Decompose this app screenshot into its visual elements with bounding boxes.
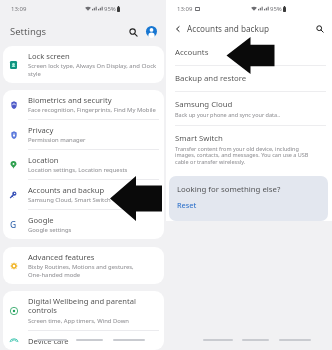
staticText: Backup and restore bbox=[175, 73, 247, 84]
staticText: Transfer content from your old device, i… bbox=[175, 145, 309, 166]
staticText: Privacy bbox=[28, 125, 54, 135]
staticText: Back up your phone and sync your data.. bbox=[175, 111, 281, 118]
button[interactable]: Digital Wellbeing and parental controls bbox=[3, 291, 164, 330]
staticText: Google bbox=[28, 215, 54, 225]
button[interactable]: Smart Switch bbox=[166, 126, 332, 173]
staticText: 13:09 bbox=[11, 5, 27, 13]
button[interactable]: Lock screen bbox=[3, 46, 164, 83]
button[interactable]: Backup and restore bbox=[166, 66, 332, 91]
button[interactable]: Advanced features bbox=[3, 247, 164, 284]
staticText: G bbox=[10, 219, 17, 231]
button[interactable]: Accounts bbox=[166, 40, 332, 65]
button[interactable]: Home bbox=[76, 339, 103, 341]
button[interactable]: Samsung Cloud bbox=[166, 92, 332, 125]
button[interactable]: Reset bbox=[177, 200, 197, 210]
staticText: Samsung Cloud, Smart Switch bbox=[28, 196, 111, 204]
staticText: Settings bbox=[10, 25, 47, 38]
button[interactable]: Search bbox=[126, 25, 140, 39]
button[interactable]: Accounts and backup bbox=[3, 180, 164, 209]
staticText: 95% bbox=[104, 5, 116, 13]
staticText: Accounts and backup bbox=[28, 185, 105, 195]
button[interactable]: Search bbox=[314, 23, 325, 34]
staticText: Location bbox=[28, 155, 59, 165]
button[interactable]: Privacy bbox=[3, 120, 164, 149]
button[interactable]: Device care bbox=[3, 331, 164, 350]
staticText: Digital Wellbeing and parental controls bbox=[28, 296, 158, 316]
staticText: Screen lock type, Always On Display, and… bbox=[28, 62, 158, 78]
staticText: 95% bbox=[270, 5, 282, 13]
staticText: Accounts bbox=[175, 47, 209, 58]
staticText: Location settings, Location requests bbox=[28, 166, 128, 174]
staticText: Google settings bbox=[28, 226, 72, 234]
button[interactable]: Biometrics and security bbox=[3, 90, 164, 119]
staticText: Permission manager bbox=[28, 136, 86, 144]
staticText: Smart Switch bbox=[175, 133, 223, 144]
button[interactable]: G bbox=[3, 210, 164, 239]
button[interactable]: Location bbox=[3, 150, 164, 179]
staticText: Samsung Cloud bbox=[175, 99, 233, 110]
staticText: Looking for something else? bbox=[177, 184, 281, 195]
staticText: Screen time, App timers, Wind Down bbox=[28, 317, 129, 325]
button[interactable]: Back bbox=[113, 339, 145, 341]
staticText: Bixby Routines, Motions and gestures, On… bbox=[28, 263, 134, 279]
button[interactable]: Account bbox=[145, 25, 158, 38]
staticText: Device care bbox=[28, 336, 69, 345]
staticText: Face recognition, Fingerprints, Find My … bbox=[28, 106, 156, 114]
staticText: 13:09 bbox=[177, 5, 193, 13]
staticText: Lock screen bbox=[28, 51, 70, 61]
staticText: Biometrics and security bbox=[28, 95, 112, 105]
staticText: Advanced features bbox=[28, 252, 95, 262]
staticText: Accounts and backup bbox=[187, 23, 270, 34]
button[interactable]: Back bbox=[172, 23, 183, 34]
